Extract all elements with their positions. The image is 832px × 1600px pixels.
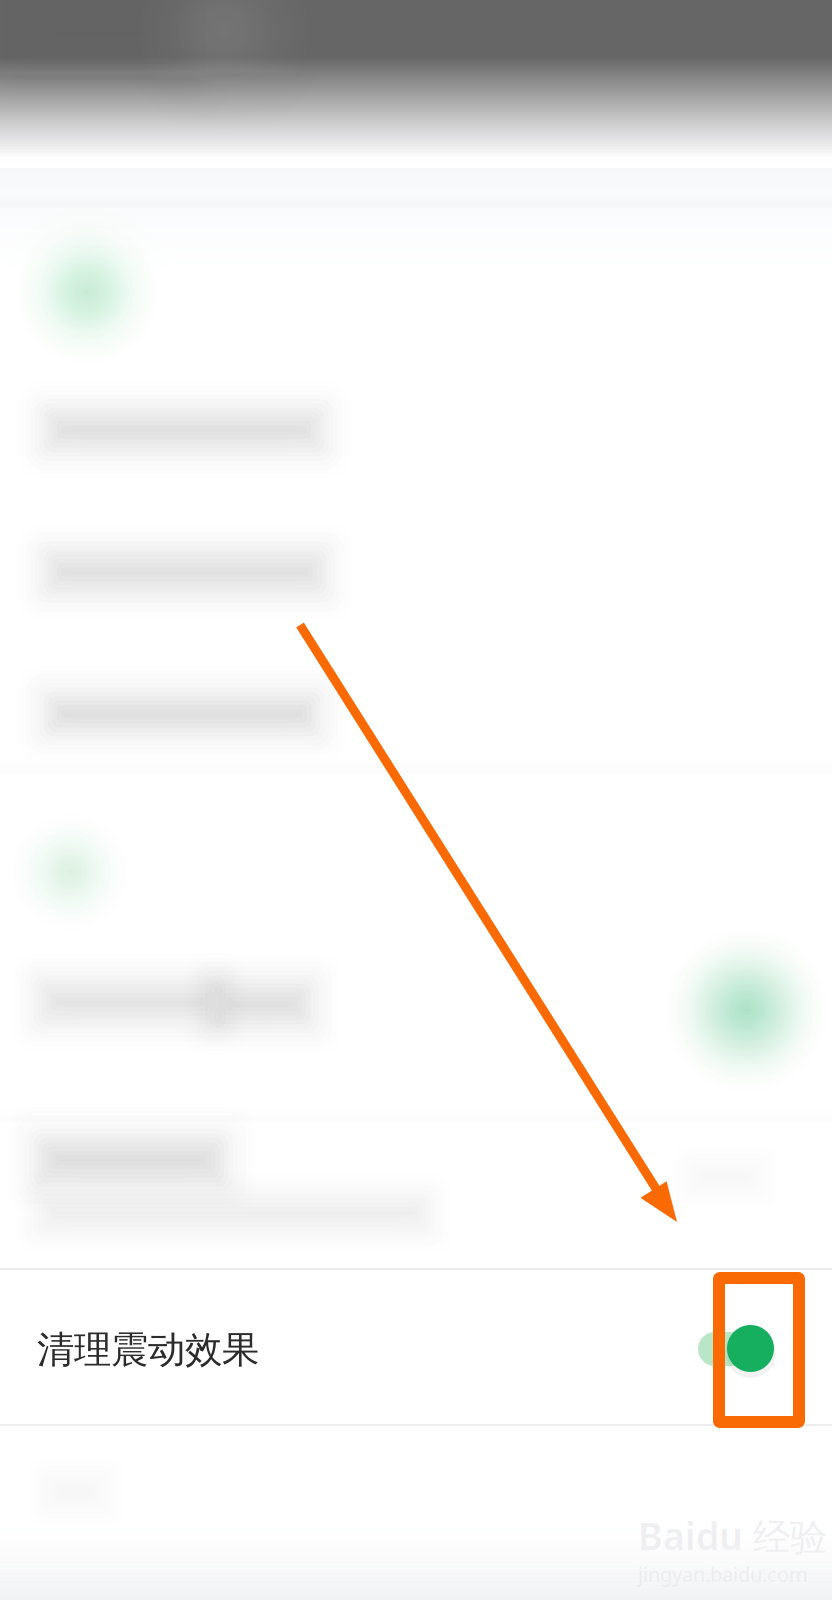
button[interactable]: 清理震动效果 bbox=[0, 1268, 832, 1426]
staticText: Baidu 经验 bbox=[638, 1511, 827, 1561]
staticText: 清理震动效果 bbox=[37, 1327, 259, 1373]
staticText: jingyan.baidu.com bbox=[638, 1561, 808, 1587]
